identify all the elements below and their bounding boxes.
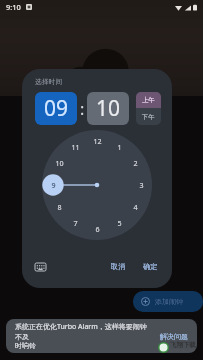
staticText: 09 xyxy=(44,94,69,123)
staticText: 4 xyxy=(133,202,138,212)
staticText: 下午 xyxy=(142,113,155,121)
staticText: 9 xyxy=(51,180,56,190)
staticText: WWW.FXXZ.COM xyxy=(170,349,195,353)
staticText: 取消 xyxy=(111,262,126,271)
staticText: 8 xyxy=(57,202,62,212)
button[interactable]: 时钟表盘 xyxy=(42,130,152,240)
staticText: 9:10 xyxy=(6,2,21,12)
staticText: 12 xyxy=(93,136,102,146)
staticText: 3 xyxy=(139,180,144,190)
button[interactable]: 09 xyxy=(35,92,77,125)
staticText: 解决问题 xyxy=(160,332,188,341)
staticText: 选择时间 xyxy=(35,77,63,86)
staticText: 确定 xyxy=(143,262,158,271)
staticText: 6 xyxy=(95,224,100,234)
staticText: 10 xyxy=(55,158,64,168)
staticText: 2 xyxy=(133,158,138,168)
button[interactable]: 取消 xyxy=(105,259,132,274)
button[interactable]: 确定 xyxy=(137,259,164,274)
button[interactable]: 添加闹钟 xyxy=(133,291,203,312)
staticText: 添加闹钟 xyxy=(155,297,183,306)
staticText: 飞翔下载 xyxy=(170,341,196,349)
staticText: 上午 xyxy=(142,96,155,104)
button[interactable]: 上午 xyxy=(136,92,161,108)
button[interactable]: 10 xyxy=(87,92,129,125)
staticText: 7 xyxy=(73,218,78,228)
staticText: : xyxy=(80,98,85,120)
staticText: 系统正在优化Turbo Alarm，这样将要闹钟不及 时响铃 xyxy=(15,322,151,350)
staticText: 11 xyxy=(71,142,80,152)
staticText: 5 xyxy=(117,218,122,228)
staticText: 10 xyxy=(96,94,121,123)
button[interactable]: 切换到键盘输入 xyxy=(31,258,49,276)
button[interactable]: 下午 xyxy=(136,108,161,125)
staticText: 1 xyxy=(117,142,122,152)
button[interactable]: 解决问题 xyxy=(156,329,192,344)
